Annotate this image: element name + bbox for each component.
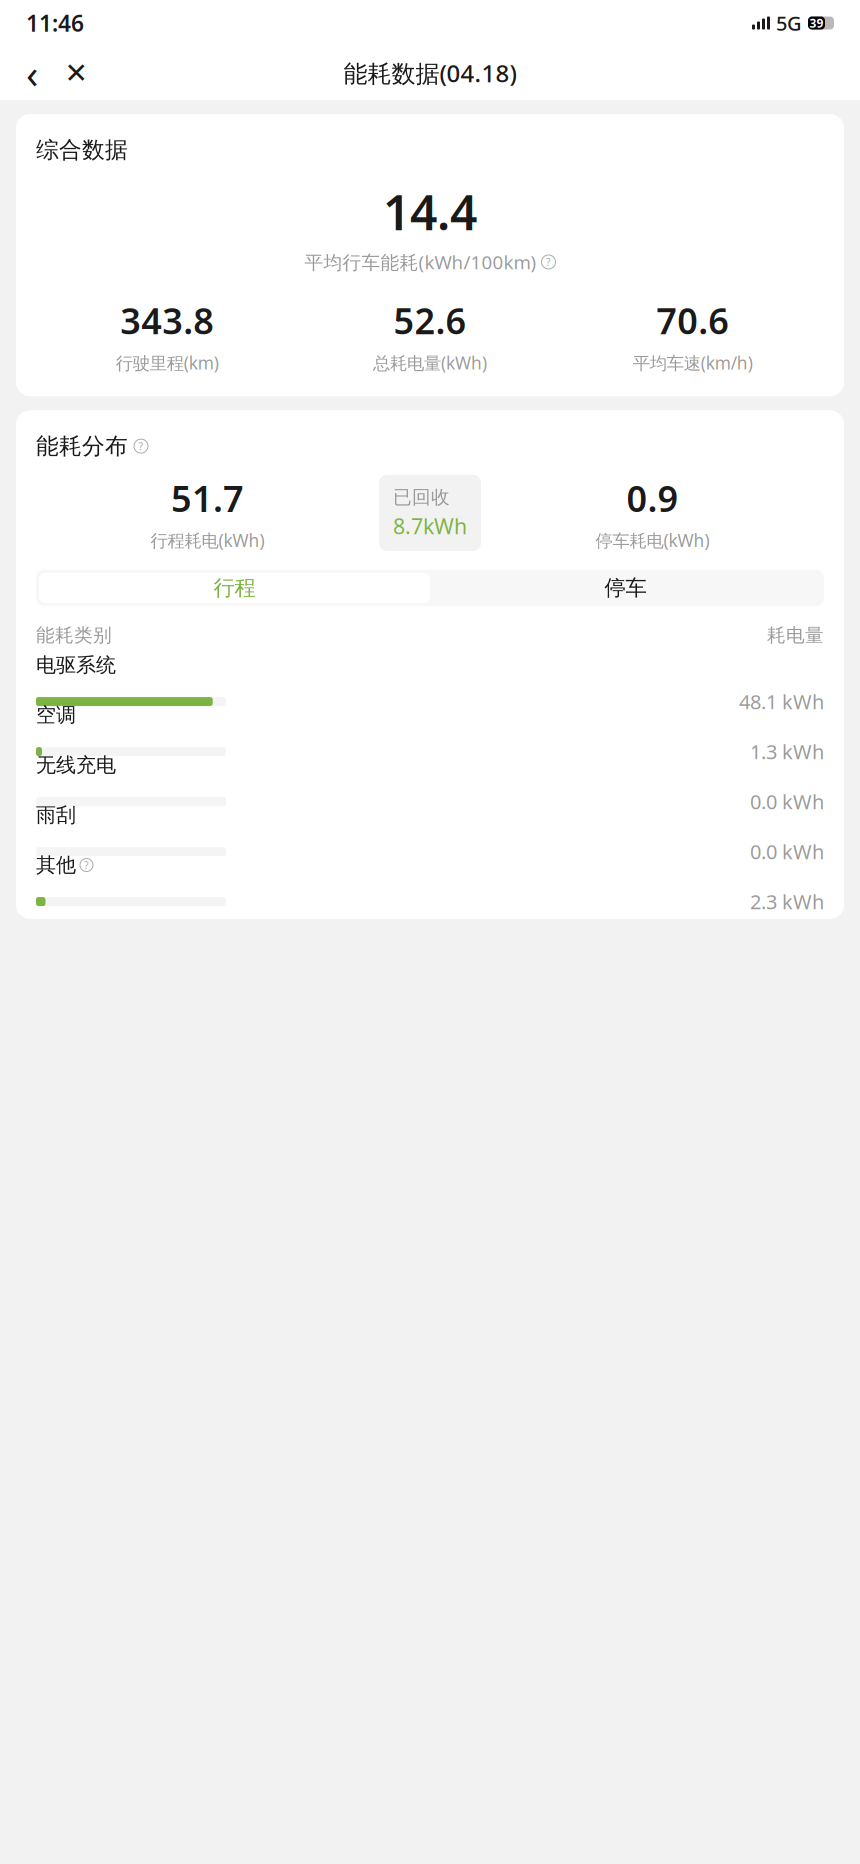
staticText: 行程耗电(kWh) <box>150 529 264 552</box>
staticText: 能耗类别 <box>36 624 112 647</box>
staticText: 能耗分布 <box>36 432 128 460</box>
staticText: 综合数据 <box>36 136 128 164</box>
staticText: 平均行车能耗(kWh/100km) <box>304 250 536 274</box>
staticText: 39 <box>809 15 823 31</box>
staticText: 无线充电 <box>36 753 116 777</box>
button[interactable]: 关闭 <box>54 51 98 95</box>
staticText: 其他 <box>36 853 76 877</box>
staticText: 14.4 <box>383 180 477 243</box>
staticText: 停车耗电(kWh) <box>595 529 709 552</box>
staticText: 1.3 kWh <box>750 738 824 765</box>
staticText: ✕ <box>64 57 87 89</box>
staticText: 0.0 kWh <box>750 788 824 815</box>
staticText: 343.8 <box>120 296 214 344</box>
staticText: 空调 <box>36 703 76 727</box>
staticText: 平均车速(km/h) <box>633 351 753 374</box>
staticText: 电驱系统 <box>36 653 116 677</box>
staticText: 48.1 kWh <box>739 688 824 715</box>
staticText: 已回收 <box>393 486 450 509</box>
staticText: ? <box>138 439 143 453</box>
button[interactable]: 行程 <box>39 573 430 603</box>
button[interactable]: 能耗分布说明 <box>134 439 148 453</box>
button[interactable]: 返回 <box>10 51 54 95</box>
staticText: 51.7 <box>171 474 244 522</box>
staticText: 0.0 kWh <box>750 838 824 865</box>
staticText: 耗电量 <box>767 624 824 647</box>
button[interactable]: 平均行车能耗说明 <box>304 250 555 274</box>
staticText: ? <box>84 858 89 872</box>
staticText: 52.6 <box>393 296 466 344</box>
staticText: 2.3 kWh <box>750 888 824 915</box>
staticText: 0.9 <box>626 474 678 522</box>
staticText: 行程 <box>213 575 255 601</box>
staticText: 雨刮 <box>36 803 76 827</box>
staticText: 行驶里程(km) <box>116 351 219 374</box>
staticText: 70.6 <box>656 296 729 344</box>
button[interactable]: 停车 <box>430 573 821 603</box>
staticText: 能耗数据(04.18) <box>343 57 516 89</box>
staticText: 8.7kWh <box>393 512 467 540</box>
staticText: 11:46 <box>26 8 84 38</box>
staticText: ‹ <box>26 46 38 99</box>
staticText: ? <box>546 255 551 269</box>
staticText: 5G <box>776 10 802 36</box>
staticText: 总耗电量(kWh) <box>373 351 487 374</box>
staticText: 停车 <box>604 575 646 601</box>
